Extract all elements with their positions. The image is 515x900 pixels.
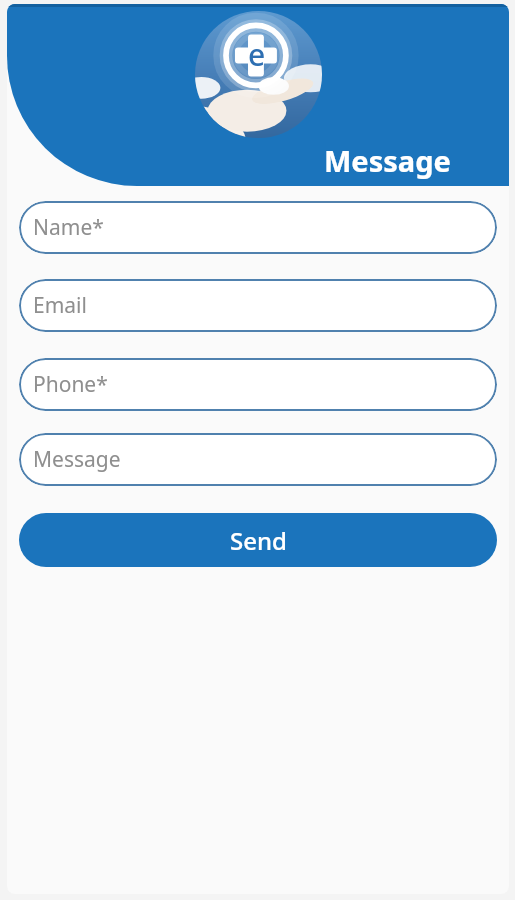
staticText: Email	[33, 291, 87, 320]
button[interactable]: Phone*	[19, 358, 497, 411]
button[interactable]: Send	[19, 513, 497, 567]
button[interactable]: Message	[19, 433, 497, 486]
staticText: Message	[33, 445, 121, 474]
staticText: Send	[230, 524, 287, 557]
button[interactable]: Name*	[19, 201, 497, 254]
staticText: Name*	[33, 213, 104, 242]
staticText: Message	[324, 141, 451, 180]
staticText: e	[248, 34, 266, 75]
staticText: Phone*	[33, 370, 108, 399]
button[interactable]: Email	[19, 279, 497, 332]
